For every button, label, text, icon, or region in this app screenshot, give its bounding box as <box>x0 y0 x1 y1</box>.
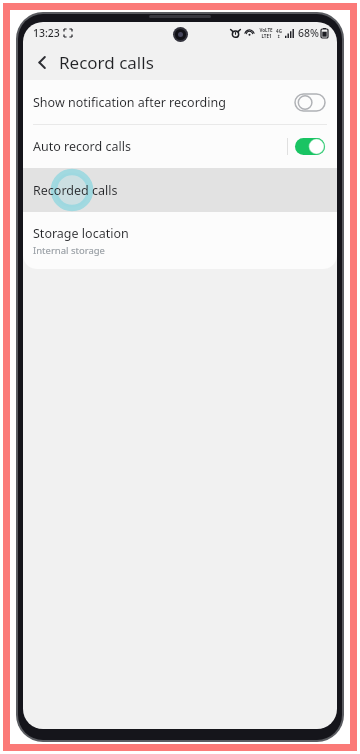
staticText: Record calls <box>59 51 154 74</box>
button[interactable]: Storage location <box>23 212 337 269</box>
button[interactable]: Switch on <box>295 138 325 155</box>
staticText: 4G <box>276 28 282 34</box>
staticText: Storage location <box>33 225 129 242</box>
button[interactable]: Recorded calls <box>23 168 337 212</box>
button[interactable]: Show notification after recording <box>23 80 337 124</box>
staticText: ↕ <box>277 34 281 39</box>
staticText: LTE1 <box>261 33 272 39</box>
staticText: 13:23 <box>33 26 60 40</box>
staticText: VoLTE <box>259 27 273 33</box>
staticText: Recorded calls <box>33 182 118 199</box>
button[interactable]: Back <box>28 48 56 76</box>
staticText: Internal storage <box>33 244 105 257</box>
staticText: Show notification after recording <box>33 94 295 111</box>
button[interactable]: Auto record calls <box>23 125 337 168</box>
staticText: 68% <box>298 26 319 40</box>
button[interactable]: Switch off <box>295 94 325 111</box>
staticText: Auto record calls <box>33 138 287 155</box>
